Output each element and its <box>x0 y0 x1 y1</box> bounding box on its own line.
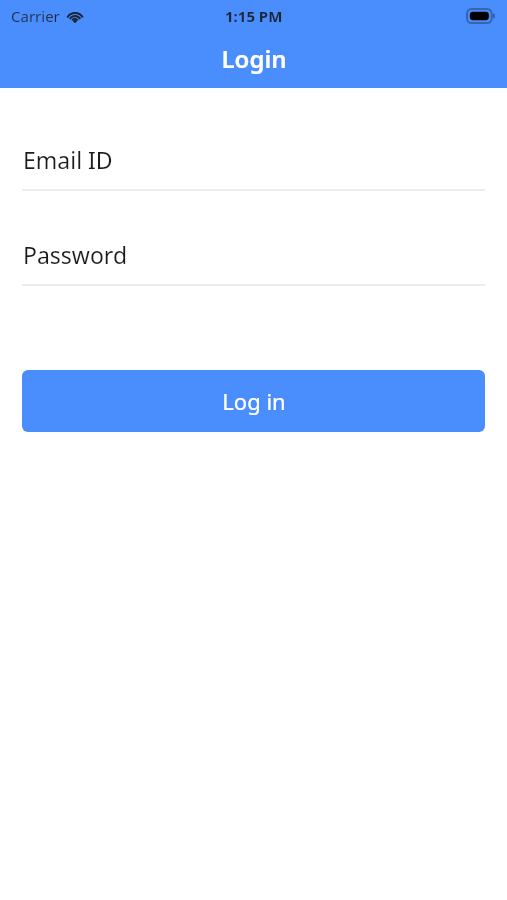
staticText: Email ID <box>23 144 113 175</box>
button[interactable]: Email ID <box>22 144 485 191</box>
button[interactable]: Log in <box>22 370 485 432</box>
staticText: Log in <box>222 386 286 416</box>
staticText: Login <box>221 42 287 75</box>
staticText: Carrier <box>11 6 60 26</box>
button[interactable]: Password <box>22 239 485 286</box>
staticText: 1:15 PM <box>225 6 283 26</box>
staticText: Password <box>23 239 128 270</box>
